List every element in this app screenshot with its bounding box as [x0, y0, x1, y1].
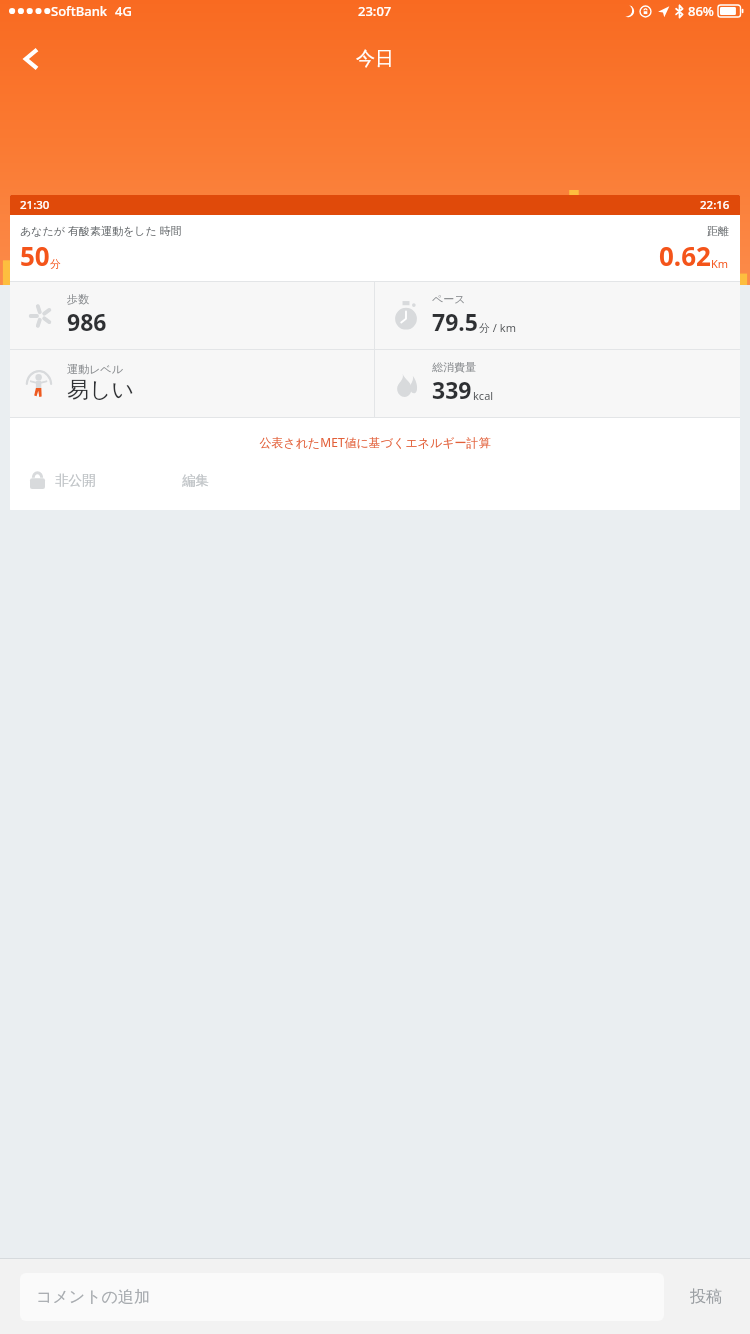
- staticText: あなたが 有酸素運動をした 時間: [20, 223, 182, 238]
- staticText: 4G: [115, 2, 132, 20]
- staticText: 距離: [707, 224, 729, 238]
- staticText: 公表されたMET値に基づくエネルギー計算: [259, 434, 491, 450]
- staticText: 21:30: [20, 197, 50, 213]
- button[interactable]: 投稿: [664, 1287, 730, 1307]
- button[interactable]: 歩数: [10, 282, 374, 349]
- staticText: 総消費量: [432, 360, 476, 374]
- staticText: 22:16: [700, 197, 730, 213]
- staticText: SoftBank: [51, 2, 108, 20]
- button[interactable]: 非公開: [30, 471, 96, 489]
- button[interactable]: 公表されたMET値に基づくエネルギー計算: [10, 434, 740, 450]
- staticText: 86%: [688, 2, 714, 20]
- button[interactable]: Back: [8, 36, 54, 82]
- button[interactable]: 編集: [182, 472, 209, 489]
- button[interactable]: ペース: [375, 282, 740, 349]
- staticText: 運動レベル: [67, 362, 123, 376]
- staticText: 986: [67, 306, 107, 337]
- staticText: 歩数: [67, 292, 89, 306]
- staticText: kcal: [473, 388, 494, 403]
- button[interactable]: 総消費量: [375, 350, 740, 417]
- staticText: 23:07: [358, 2, 392, 20]
- staticText: ペース: [432, 292, 466, 306]
- staticText: Km: [711, 256, 729, 271]
- staticText: 50: [20, 238, 50, 273]
- staticText: 易しい: [67, 376, 135, 404]
- staticText: 0.62: [659, 238, 711, 273]
- staticText: 投稿: [690, 1287, 722, 1307]
- staticText: コメントの追加: [36, 1287, 150, 1307]
- staticText: 分 / km: [479, 320, 516, 335]
- staticText: 339: [432, 374, 472, 405]
- button[interactable]: コメントの追加: [20, 1273, 664, 1321]
- staticText: 非公開: [55, 472, 96, 489]
- staticText: 分: [50, 257, 61, 271]
- staticText: 今日: [356, 47, 394, 71]
- button[interactable]: 運動レベル: [10, 350, 374, 417]
- staticText: 編集: [182, 472, 209, 489]
- staticText: 79.5: [432, 306, 478, 337]
